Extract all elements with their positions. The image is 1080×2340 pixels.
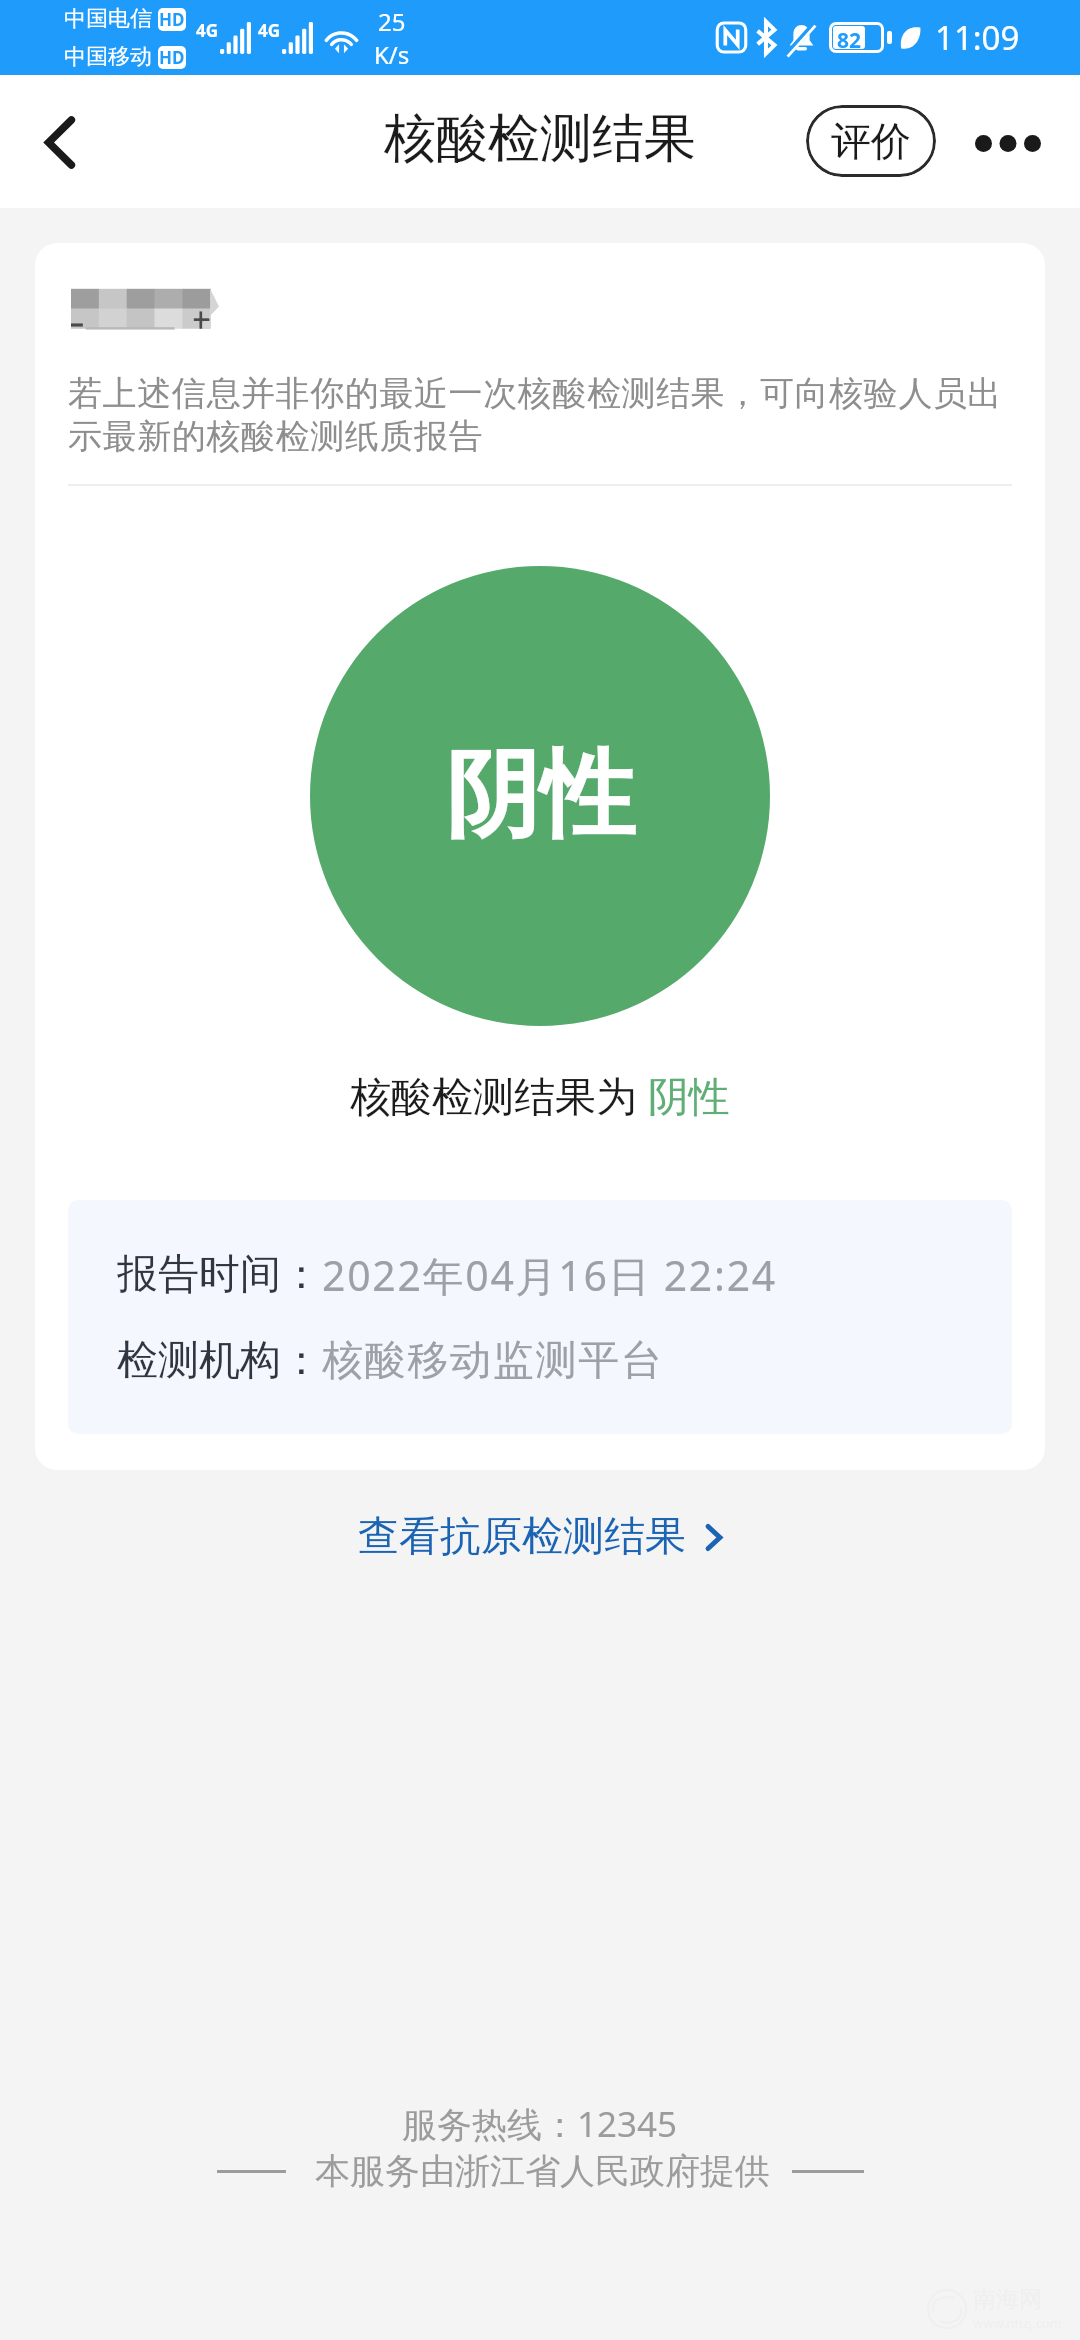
button[interactable]: 查看抗原检测结果 — [328, 1497, 752, 1577]
staticText: 评价 — [831, 116, 911, 166]
staticText: HD — [159, 8, 185, 31]
staticText: 4G — [196, 19, 219, 42]
staticText: 中国移动 — [64, 43, 152, 71]
staticText: 本服务由浙江省人民政府提供 — [315, 2149, 770, 2193]
staticText: 11:09 — [935, 15, 1020, 60]
staticText: 2022年04月16日 22:24 — [322, 1247, 777, 1303]
staticText: 中国电信 — [64, 5, 152, 33]
staticText: 核酸移动监测平台 — [322, 1335, 664, 1387]
staticText: 核酸检测结果 — [384, 106, 696, 172]
button[interactable]: 更多 — [960, 93, 1056, 189]
staticText: HD — [159, 46, 185, 69]
staticText: 82 — [837, 26, 862, 49]
button[interactable]: 评价 — [806, 105, 936, 177]
staticText: 报告时间： — [117, 1249, 322, 1301]
staticText: 若上述信息并非你的最近一次核酸检测结果，可向核验人员出 示最新的核酸检测纸质报告 — [68, 372, 1012, 458]
staticText: 服务热线：12345 — [402, 2100, 678, 2148]
staticText: 4G — [258, 19, 281, 42]
button[interactable]: 返回 — [0, 75, 120, 208]
staticText: 检测机构： — [117, 1335, 322, 1387]
staticText: 阴性 — [445, 736, 635, 856]
staticText: 查看抗原检测结果 — [358, 1511, 686, 1563]
staticText: 核酸检测结果为 阴性 — [350, 1067, 730, 1123]
staticText: K/s — [374, 38, 410, 71]
staticText: 25 — [378, 5, 406, 38]
